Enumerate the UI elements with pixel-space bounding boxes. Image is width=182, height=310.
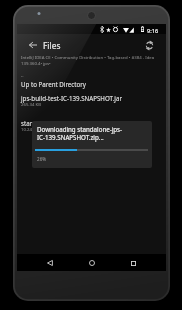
staticText: Up to Parent Directory [21,80,87,88]
button[interactable]: Back [42,255,58,271]
button[interactable] [17,73,166,91]
staticText: 26% [37,156,47,162]
staticText: 139.360.4• jps• [21,60,51,66]
staticText: Downloading standalone-jps- [37,125,123,133]
staticText: IntelliJ IDEA CE • Community Distributio… [21,54,155,60]
button[interactable] [17,93,166,109]
staticText: Files [43,40,61,51]
staticText: 265.34 KB [21,101,42,107]
staticText: 9:16 [147,27,159,35]
button[interactable]: Downloading standalone-jps- [32,121,152,168]
button[interactable]: Recents [125,255,141,271]
button[interactable]: Home [84,255,100,271]
button[interactable]: Back [24,36,41,54]
staticText: jps-build-test-IC-139.SNAPSHOT.jar [21,94,122,102]
staticText: 10.24 MB [21,126,40,132]
staticText: IC-139.SNAPSHOT.zip... [37,133,104,141]
button[interactable] [17,118,166,134]
staticText: .. [21,72,24,79]
staticText: standalone-jps-IC-139.SNAPSHOT.zip [21,119,128,127]
button[interactable]: Refresh [141,36,158,54]
